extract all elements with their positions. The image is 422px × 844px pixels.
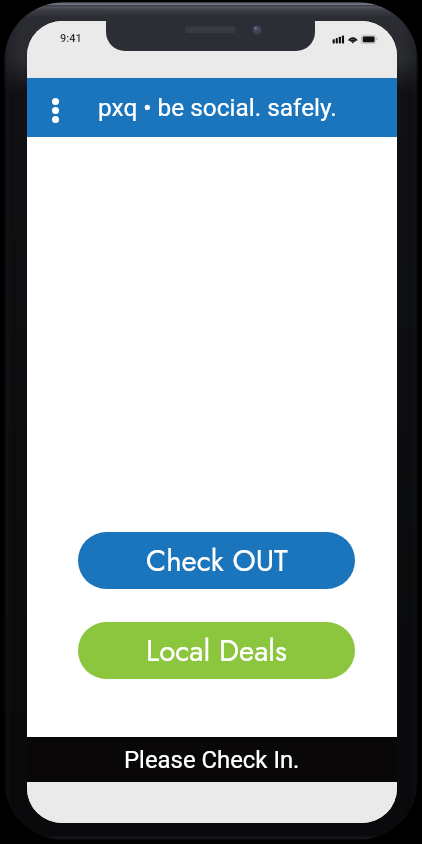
button[interactable]: Check OUT	[78, 532, 355, 589]
button[interactable]: More options	[43, 86, 67, 130]
staticText: Local Deals	[146, 630, 287, 672]
button[interactable]: Local Deals	[78, 622, 355, 679]
staticText: 9:41	[60, 32, 82, 45]
staticText: Check OUT	[146, 540, 288, 582]
staticText: Please Check In.	[124, 746, 300, 774]
staticText: pxq • be social. safely.	[98, 93, 337, 122]
